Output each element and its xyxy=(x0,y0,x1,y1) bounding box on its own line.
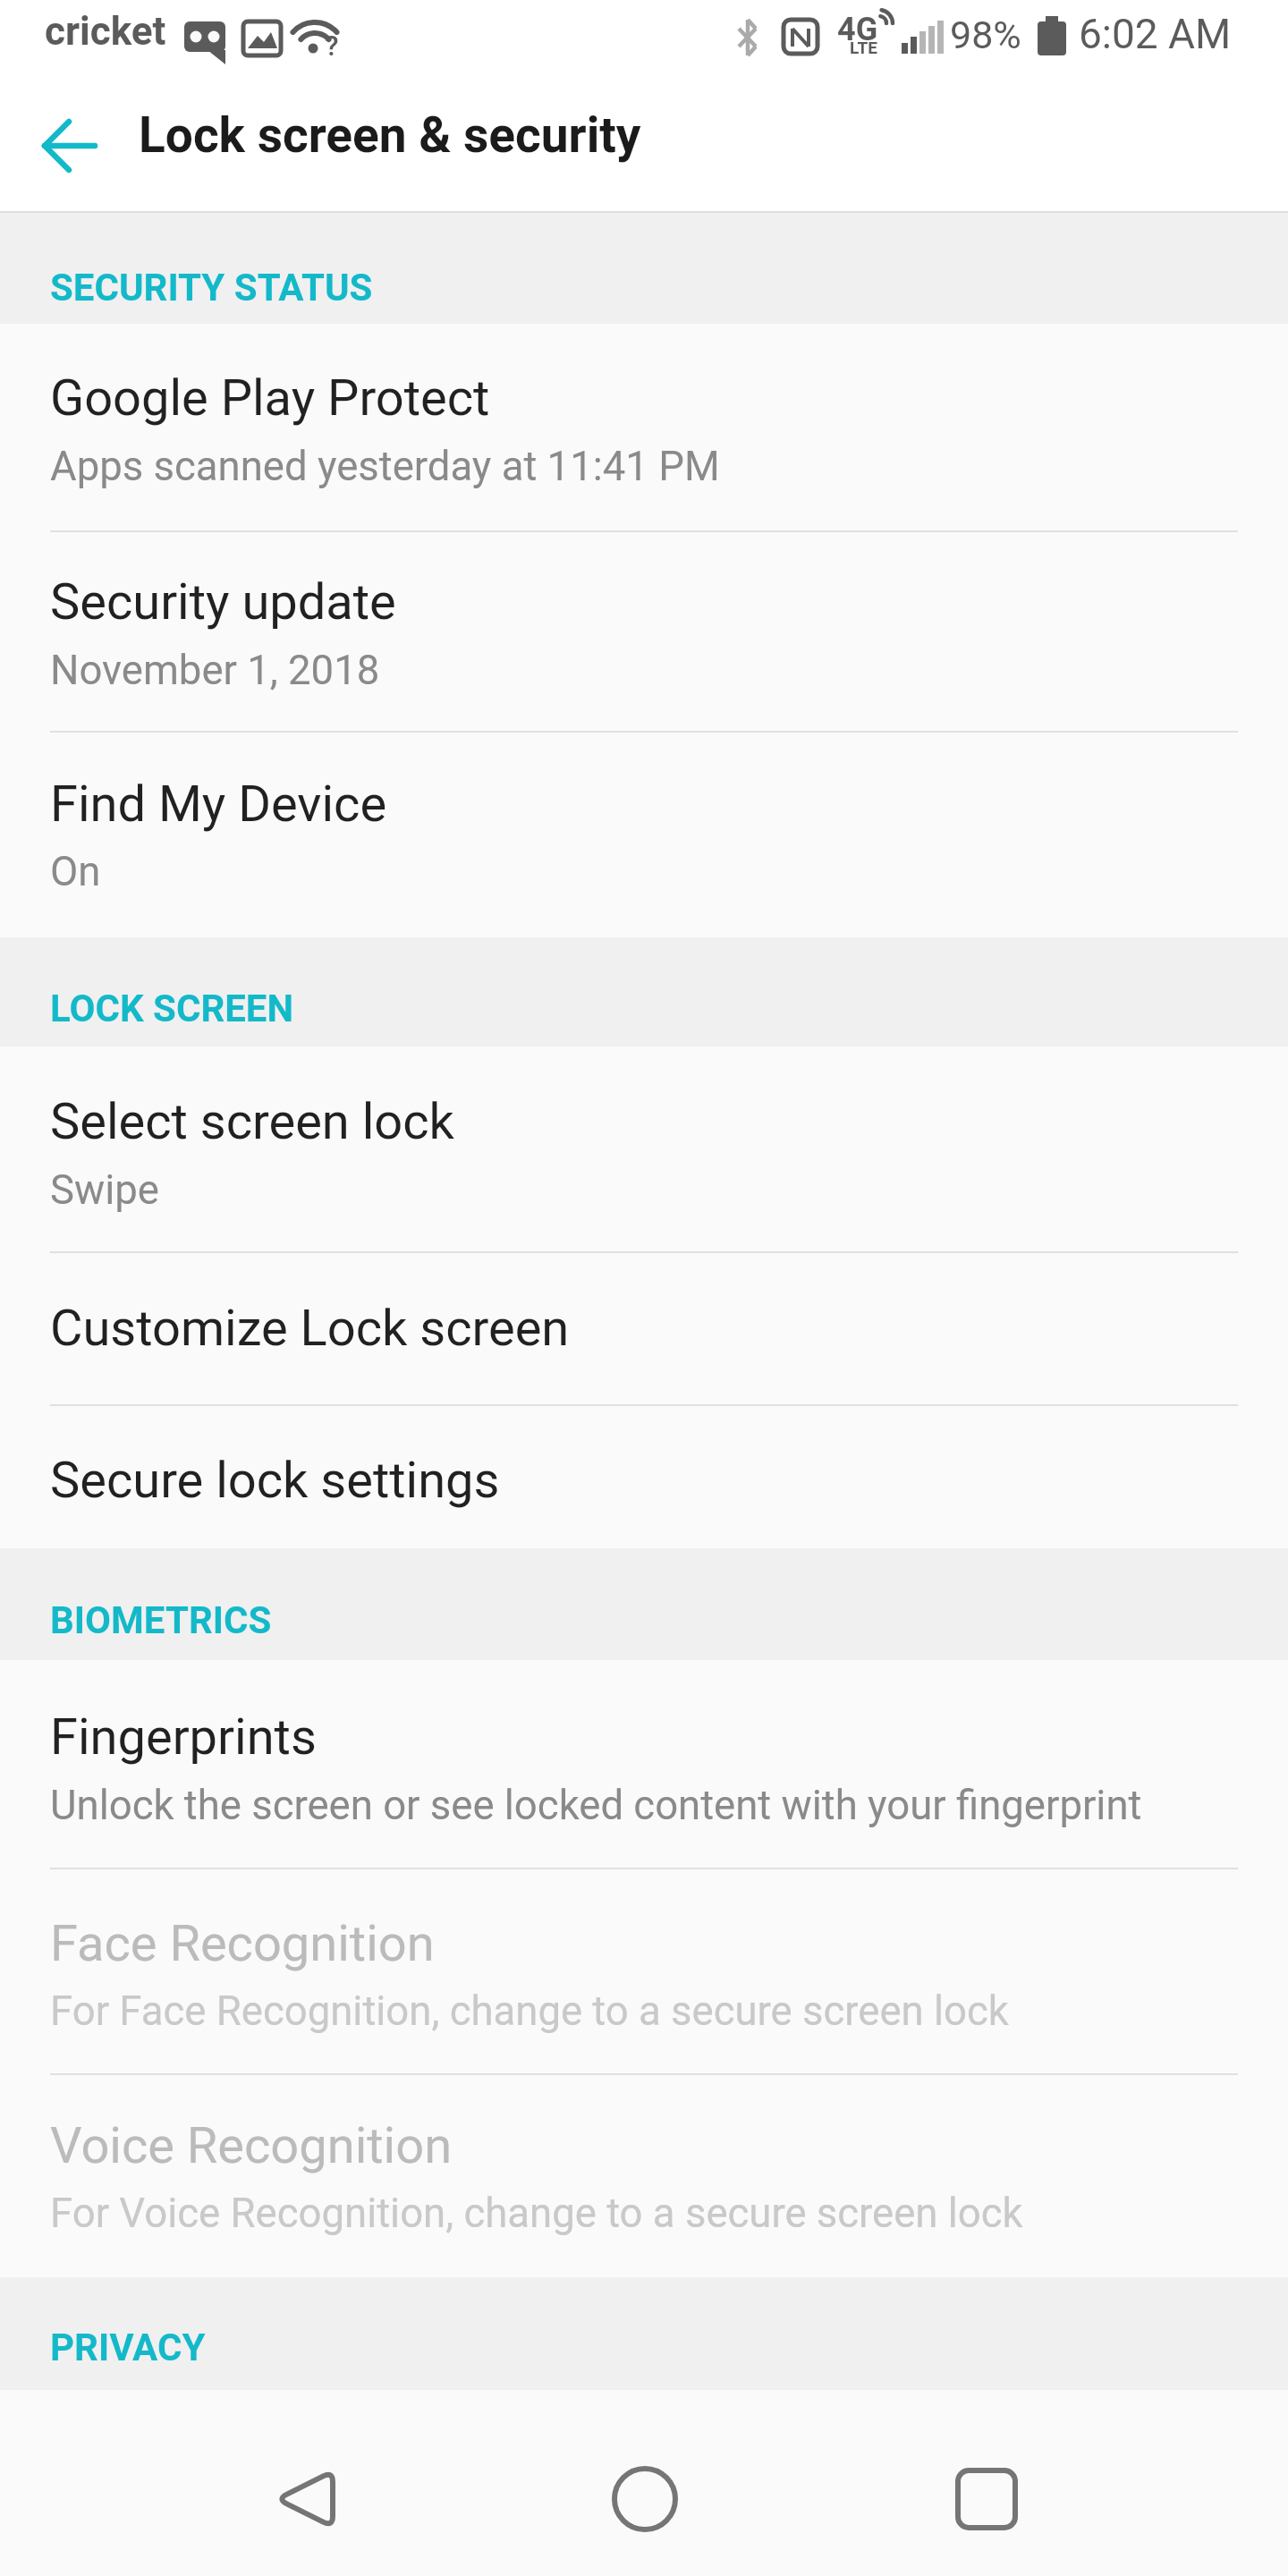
staticText: Find My Device xyxy=(50,775,387,834)
staticText: Select screen lock xyxy=(50,1092,454,1151)
staticText: Face Recognition xyxy=(50,1914,435,1973)
staticText: 4G xyxy=(837,11,878,48)
button[interactable] xyxy=(27,103,112,188)
staticText: Swipe xyxy=(50,1166,159,1214)
staticText: For Voice Recognition, change to a secur… xyxy=(50,2190,1023,2237)
staticText: cricket xyxy=(45,8,166,55)
staticText: Google Play Protect xyxy=(50,369,490,428)
staticText: November 1, 2018 xyxy=(50,647,380,694)
button[interactable]: Security update xyxy=(0,532,1288,731)
staticText: On xyxy=(50,848,101,895)
button[interactable]: Fingerprints xyxy=(0,1660,1288,1868)
button[interactable] xyxy=(582,2468,708,2530)
button[interactable] xyxy=(924,2468,1049,2530)
staticText: Voice Recognition xyxy=(50,2116,453,2175)
button[interactable]: Face Recognition xyxy=(0,1869,1288,2073)
staticText: Apps scanned yesterday at 11:41 PM xyxy=(50,443,720,490)
button[interactable]: Voice Recognition xyxy=(0,2075,1288,2277)
staticText: SECURITY STATUS xyxy=(50,266,373,309)
button[interactable]: Customize Lock screen xyxy=(0,1253,1288,1404)
button[interactable]: Select screen lock xyxy=(0,1046,1288,1251)
staticText: ? xyxy=(325,29,339,63)
button[interactable]: Find My Device xyxy=(0,733,1288,937)
staticText: BIOMETRICS xyxy=(50,1598,272,1642)
staticText: Customize Lock screen xyxy=(50,1299,570,1358)
staticText: Lock screen & security xyxy=(139,106,641,164)
staticText: For Face Recognition, change to a secure… xyxy=(50,1987,1009,2035)
staticText: Unlock the screen or see locked content … xyxy=(50,1782,1142,1829)
staticText: PRIVACY xyxy=(50,2326,206,2369)
staticText: 98% xyxy=(950,13,1021,57)
button[interactable] xyxy=(241,2468,367,2530)
staticText: LOCK SCREEN xyxy=(50,987,294,1030)
staticText: Secure lock settings xyxy=(50,1451,500,1510)
button[interactable]: Secure lock settings xyxy=(0,1406,1288,1548)
staticText: Security update xyxy=(50,572,396,631)
staticText: 6:02 AM xyxy=(1079,10,1232,58)
staticText: Fingerprints xyxy=(50,1707,317,1767)
button[interactable]: Google Play Protect xyxy=(0,324,1288,530)
staticText: LTE xyxy=(850,38,877,57)
